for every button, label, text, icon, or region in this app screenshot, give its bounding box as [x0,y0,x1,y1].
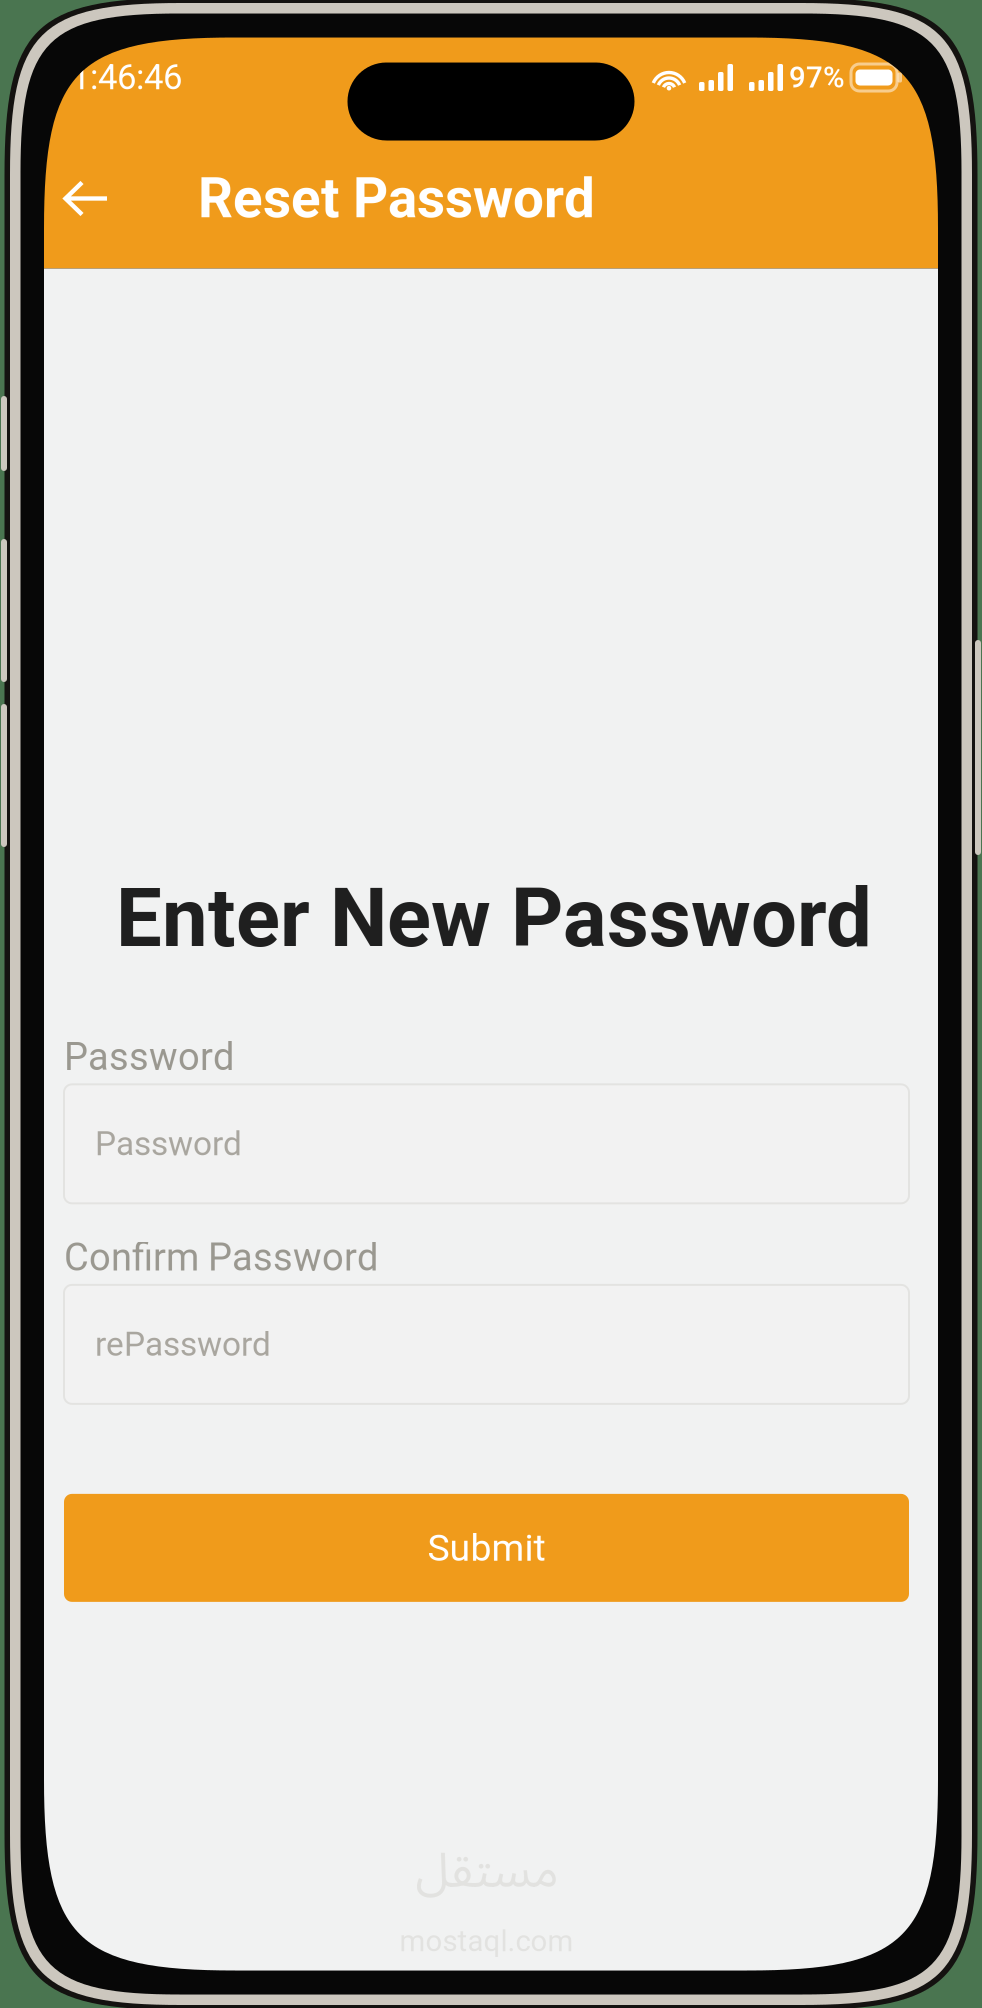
button[interactable]: Submit [64,1494,909,1602]
staticText: rePassword [95,1325,271,1364]
staticText: Password [64,1035,234,1079]
staticText: mostaql.com [399,1924,573,1958]
staticText: Reset Password [198,166,595,231]
staticText: Confirm Password [64,1235,378,1280]
staticText: Submit [427,1526,545,1570]
staticText: Password [95,1124,242,1163]
staticText: 97% [789,60,845,95]
staticText: 1:46:46 [71,57,182,98]
button[interactable]: Back [63,162,198,234]
staticText: مستقل [415,1821,558,1922]
staticText: Enter New Password [116,870,872,966]
